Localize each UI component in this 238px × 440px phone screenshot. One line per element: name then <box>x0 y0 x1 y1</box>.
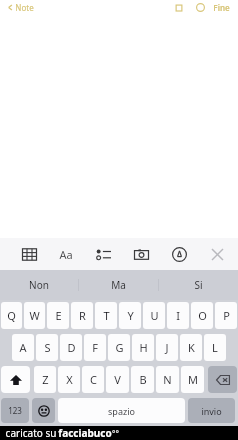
button[interactable]: C <box>82 366 104 393</box>
button[interactable]: S <box>36 334 58 361</box>
staticText: Y <box>127 308 134 323</box>
staticText: Fine <box>213 2 230 13</box>
staticText: O <box>198 308 207 323</box>
button[interactable]: I <box>167 302 189 329</box>
staticText: A <box>19 340 27 355</box>
staticText: Z <box>42 372 49 387</box>
button[interactable]: Shift <box>1 366 30 393</box>
staticText: J <box>165 340 169 355</box>
button[interactable]: B <box>131 366 154 393</box>
staticText: S <box>44 340 51 355</box>
staticText: Aa <box>59 247 73 262</box>
staticText: E <box>55 308 62 323</box>
button[interactable]: W <box>24 302 45 329</box>
button[interactable]: Table <box>16 241 42 267</box>
staticText: invio <box>201 405 222 417</box>
button[interactable]: Non <box>0 270 78 300</box>
staticText: W <box>29 308 40 323</box>
staticText: N <box>163 372 172 387</box>
button[interactable]: Ma <box>79 270 158 300</box>
button[interactable]: New note <box>193 0 207 14</box>
staticText: G <box>115 340 124 355</box>
staticText: Si <box>194 278 203 292</box>
staticText: Non <box>29 278 49 292</box>
staticText: F <box>92 340 98 355</box>
button[interactable]: spazio <box>58 398 185 423</box>
button[interactable]: G <box>108 334 130 361</box>
button[interactable]: V <box>106 366 129 393</box>
staticText: K <box>188 340 195 355</box>
staticText: Ma <box>111 278 126 292</box>
button[interactable]: Backspace <box>208 366 237 393</box>
button[interactable]: M <box>181 366 204 393</box>
button[interactable]: R <box>71 302 93 329</box>
staticText: D <box>67 340 76 355</box>
staticText: spazio <box>108 405 135 417</box>
button[interactable]: K <box>180 334 202 361</box>
button[interactable]: invio <box>188 398 235 423</box>
button[interactable]: F <box>84 334 106 361</box>
staticText: H <box>139 340 148 355</box>
button[interactable]: E <box>47 302 69 329</box>
staticText: C <box>90 372 97 387</box>
button[interactable]: Aa <box>53 241 79 267</box>
staticText: 123 <box>8 405 22 416</box>
button[interactable]: U <box>143 302 165 329</box>
staticText: M <box>188 372 198 387</box>
button[interactable]: T <box>95 302 117 329</box>
staticText: P <box>223 308 230 323</box>
button[interactable]: Emoji <box>32 398 55 423</box>
staticText: facciabuco <box>58 426 112 440</box>
button[interactable]: J <box>156 334 178 361</box>
staticText: B <box>139 372 147 387</box>
button[interactable]: L <box>204 334 226 361</box>
button[interactable]: Note <box>5 1 36 14</box>
button[interactable]: 123 <box>1 398 29 423</box>
button[interactable]: X <box>58 366 80 393</box>
button[interactable]: Share <box>172 0 186 14</box>
staticText: L <box>212 340 218 355</box>
staticText: T <box>103 308 110 323</box>
button[interactable]: Z <box>34 366 56 393</box>
staticText: U <box>150 308 159 323</box>
button[interactable]: Fine <box>210 1 233 14</box>
staticText: Note <box>15 2 34 13</box>
button[interactable]: Close keyboard <box>204 241 230 267</box>
button[interactable]: N <box>156 366 179 393</box>
button[interactable]: Markup <box>166 241 192 267</box>
button[interactable]: A <box>12 334 34 361</box>
staticText: X <box>66 372 73 387</box>
button[interactable]: Q <box>1 302 22 329</box>
button[interactable]: P <box>215 302 237 329</box>
button[interactable]: H <box>132 334 154 361</box>
button[interactable]: O <box>191 302 213 329</box>
staticText: caricato su <box>4 426 58 440</box>
staticText: V <box>114 372 121 387</box>
button[interactable]: Checklist <box>90 241 116 267</box>
button[interactable]: Y <box>119 302 141 329</box>
staticText: I <box>176 308 180 323</box>
button[interactable]: D <box>60 334 82 361</box>
button[interactable]: Camera <box>128 241 154 267</box>
staticText: R <box>79 308 86 323</box>
staticText: °° <box>112 428 119 439</box>
button[interactable]: Si <box>159 270 238 300</box>
staticText: Q <box>7 308 16 323</box>
